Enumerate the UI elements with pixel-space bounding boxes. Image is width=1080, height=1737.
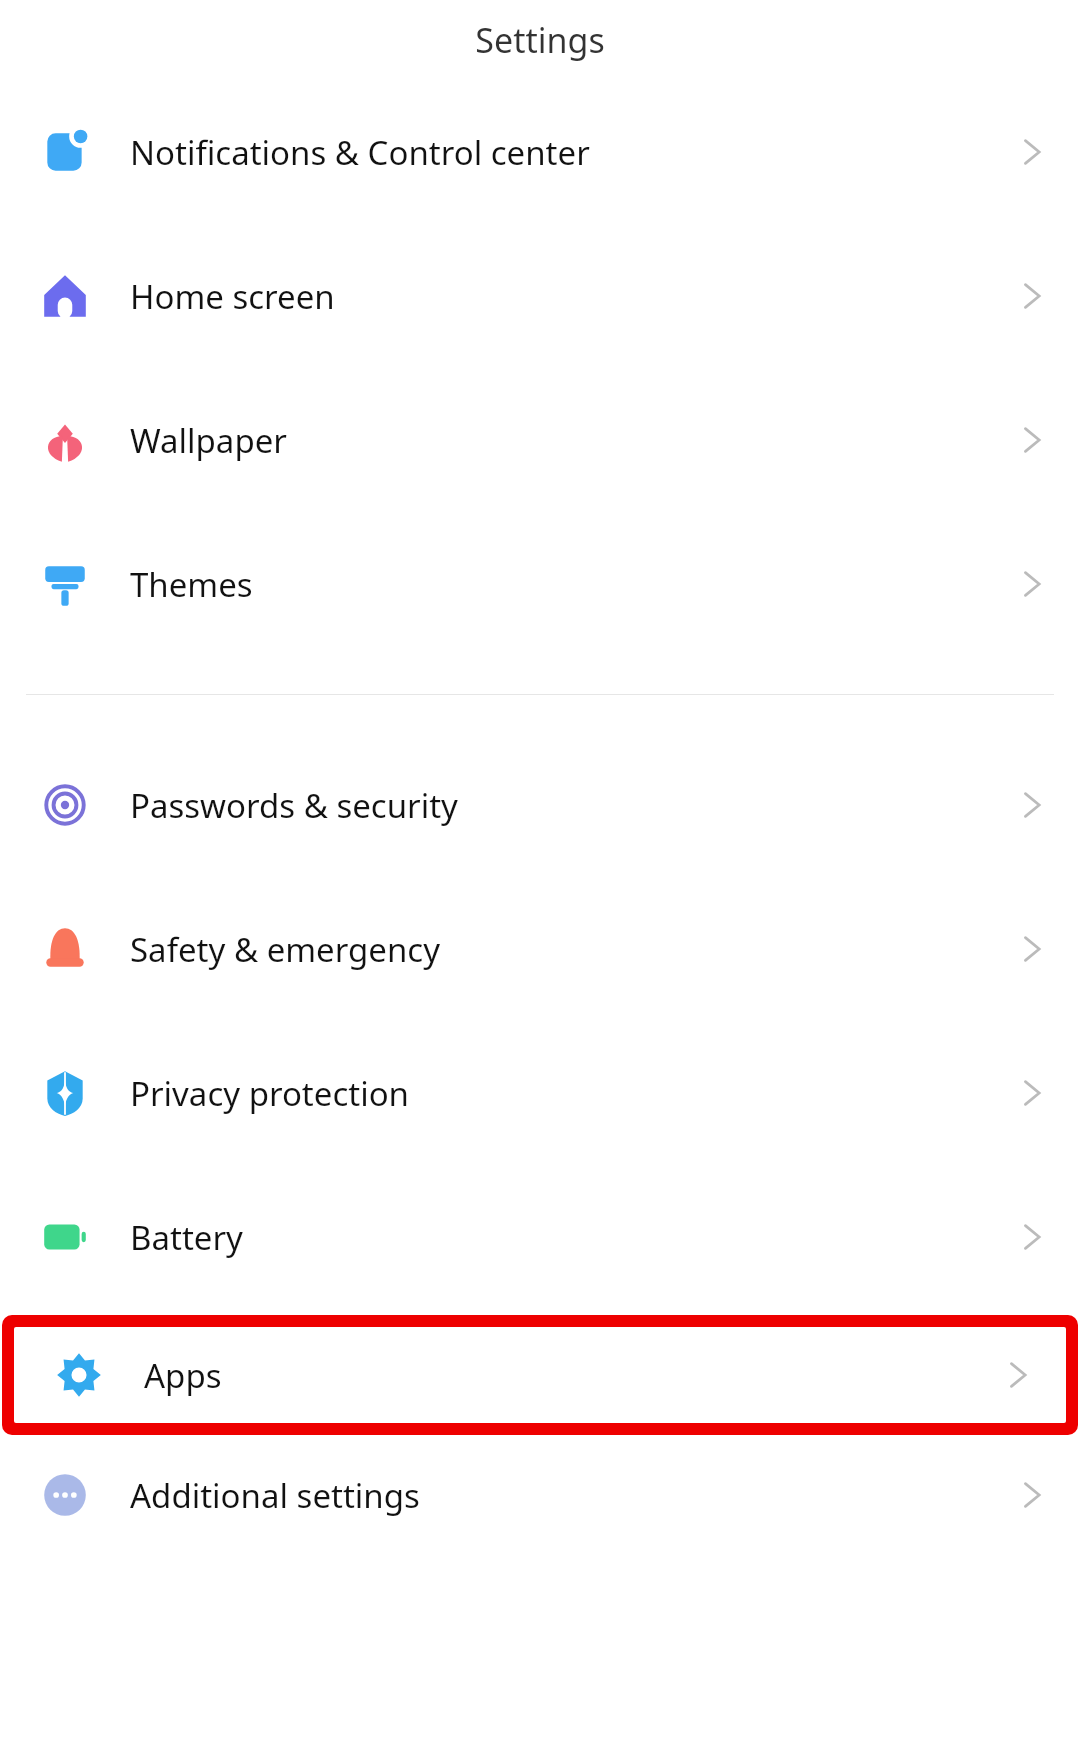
button[interactable]: Additional settings	[0, 1435, 1080, 1555]
staticText: Additional settings	[130, 1473, 984, 1518]
button[interactable]: Wallpaper	[0, 368, 1080, 512]
button[interactable]: Themes	[0, 512, 1080, 656]
staticText: Themes	[130, 562, 984, 607]
staticText: Battery	[130, 1215, 984, 1260]
button[interactable]: Safety & emergency	[0, 877, 1080, 1021]
button[interactable]: Apps	[14, 1327, 1066, 1423]
staticText: Settings	[475, 17, 605, 63]
staticText: Home screen	[130, 274, 984, 319]
button[interactable]: Privacy protection	[0, 1021, 1080, 1165]
button[interactable]: Passwords & security	[0, 733, 1080, 877]
staticText: Notifications & Control center	[130, 130, 984, 175]
staticText: Passwords & security	[130, 783, 984, 828]
staticText: Privacy protection	[130, 1071, 984, 1116]
staticText: Safety & emergency	[130, 927, 984, 972]
staticText: Apps	[144, 1353, 970, 1398]
button[interactable]: Battery	[0, 1165, 1080, 1309]
button[interactable]: Notifications & Control center	[0, 80, 1080, 224]
staticText: Wallpaper	[130, 418, 984, 463]
button[interactable]: Home screen	[0, 224, 1080, 368]
